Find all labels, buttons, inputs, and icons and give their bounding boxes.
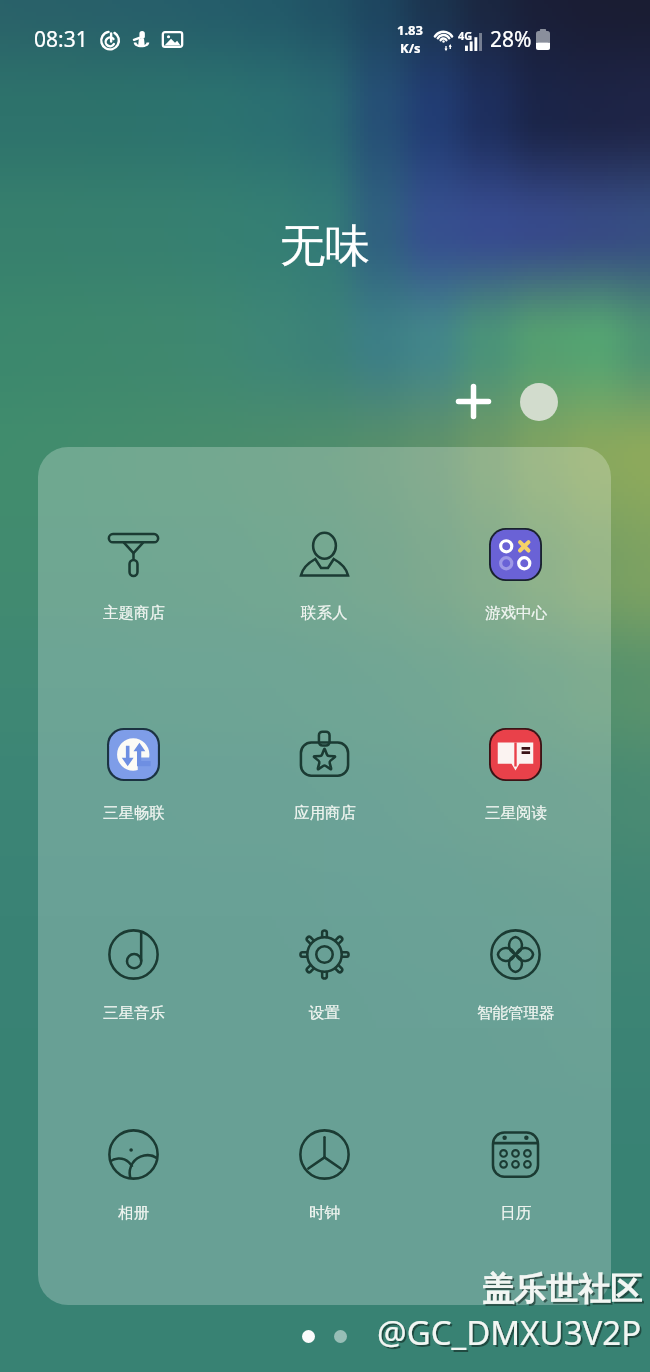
button[interactable]: 主题商店 [38,528,229,623]
staticText: K/s [400,39,421,57]
button[interactable]: 三星音乐 [38,928,229,1023]
button[interactable]: Profile [520,383,558,421]
staticText: 4G [458,28,473,43]
button[interactable]: 游戏中心 [420,528,611,623]
button[interactable]: Add [451,379,495,423]
button[interactable]: 应用商店 [229,728,420,823]
staticText: 应用商店 [294,803,356,823]
staticText: 智能管理器 [477,1003,555,1023]
button[interactable]: 相册 [38,1128,229,1223]
staticText: 28% [490,25,532,54]
staticText: 08:31 [34,25,88,54]
staticText: 三星阅读 [485,803,547,823]
staticText: 1.83 [397,21,423,39]
staticText: 三星畅联 [103,803,165,823]
button[interactable]: 智能管理器 [420,928,611,1023]
staticText: 相册 [118,1203,149,1223]
button[interactable]: 时钟 [229,1128,420,1223]
button[interactable]: 日历 [420,1128,611,1223]
button[interactable]: 联系人 [229,528,420,623]
staticText: 设置 [309,1003,340,1023]
button[interactable]: 三星阅读 [420,728,611,823]
staticText: 盖乐世社区 [484,1271,644,1311]
staticText: 盖乐世社区 [482,1269,642,1309]
staticText: 联系人 [301,603,348,623]
staticText: @GC_DMXU3V2P [377,1310,642,1355]
staticText: 无味 [280,218,370,275]
staticText: 三星音乐 [103,1003,165,1023]
staticText: 游戏中心 [485,603,547,623]
staticText: 时钟 [309,1203,340,1223]
staticText: 日历 [500,1203,531,1223]
staticText: @GC_DMXU3V2P [379,1312,644,1357]
button[interactable]: 设置 [229,928,420,1023]
staticText: 主题商店 [103,603,165,623]
button[interactable]: 三星畅联 [38,728,229,823]
